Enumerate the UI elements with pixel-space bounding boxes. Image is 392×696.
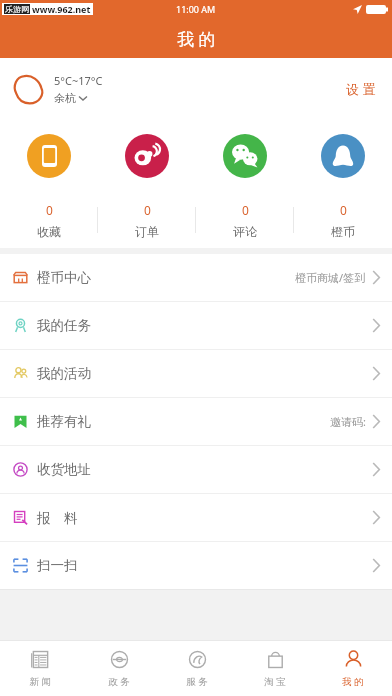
button[interactable]: Weibo login [98, 120, 196, 192]
staticText: 11:00 AM [176, 3, 216, 15]
staticText: 5°C~17°C [54, 73, 103, 88]
button[interactable]: 扫一扫 [0, 542, 392, 589]
button[interactable]: 0 [196, 192, 294, 248]
button[interactable]: 5°C~17°C [12, 72, 103, 106]
staticText: 橙币商城/签到 [295, 270, 366, 285]
button[interactable]: 橙币中心 [0, 254, 392, 301]
button[interactable]: 0 [98, 192, 196, 248]
staticText: 订单 [135, 224, 159, 239]
staticText: 新 闻 [29, 675, 51, 688]
staticText: 0 [46, 202, 53, 218]
staticText: 政 务 [108, 675, 130, 688]
staticText: 0 [242, 202, 249, 218]
staticText: 服 务 [186, 675, 208, 688]
button[interactable]: 0 [0, 192, 98, 248]
staticText: 淘 宝 [264, 675, 286, 688]
staticText: 我 的 [342, 675, 364, 688]
staticText: 橙币中心 [37, 269, 91, 286]
staticText: 0 [144, 202, 151, 218]
staticText: 收藏 [37, 224, 61, 239]
staticText: 乐游网 [5, 4, 29, 14]
staticText: 收货地址 [37, 461, 91, 478]
staticText: 设 置 [346, 80, 376, 98]
button[interactable]: WeChat login [196, 120, 294, 192]
staticText: 橙币 [331, 224, 355, 239]
staticText: 余杭 [54, 91, 76, 105]
button[interactable]: 我 的 [314, 641, 392, 696]
staticText: 报 料 [37, 509, 78, 527]
staticText: 我的活动 [37, 365, 91, 382]
staticText: 我 的 [177, 27, 216, 50]
staticText: www.962.net [32, 3, 91, 15]
button[interactable]: 收货地址 [0, 446, 392, 493]
button[interactable]: 淘 宝 [236, 641, 314, 696]
button[interactable]: Phone login [0, 120, 98, 192]
button[interactable]: 我的任务 [0, 302, 392, 349]
button[interactable]: 报 料 [0, 494, 392, 541]
button[interactable]: 服 务 [158, 641, 236, 696]
button[interactable]: QQ login [294, 120, 392, 192]
button[interactable]: 0 [294, 192, 392, 248]
button[interactable]: 我的活动 [0, 350, 392, 397]
staticText: 我的任务 [37, 317, 91, 334]
staticText: 评论 [233, 224, 257, 239]
staticText: 0 [340, 202, 347, 218]
staticText: 扫一扫 [37, 557, 78, 574]
button[interactable]: 设 置 [330, 70, 392, 108]
button[interactable]: 新 闻 [0, 641, 79, 696]
button[interactable]: 政 务 [79, 641, 158, 696]
button[interactable]: 推荐有礼 [0, 398, 392, 445]
staticText: 推荐有礼 [37, 413, 91, 430]
staticText: 邀请码: [330, 414, 366, 429]
